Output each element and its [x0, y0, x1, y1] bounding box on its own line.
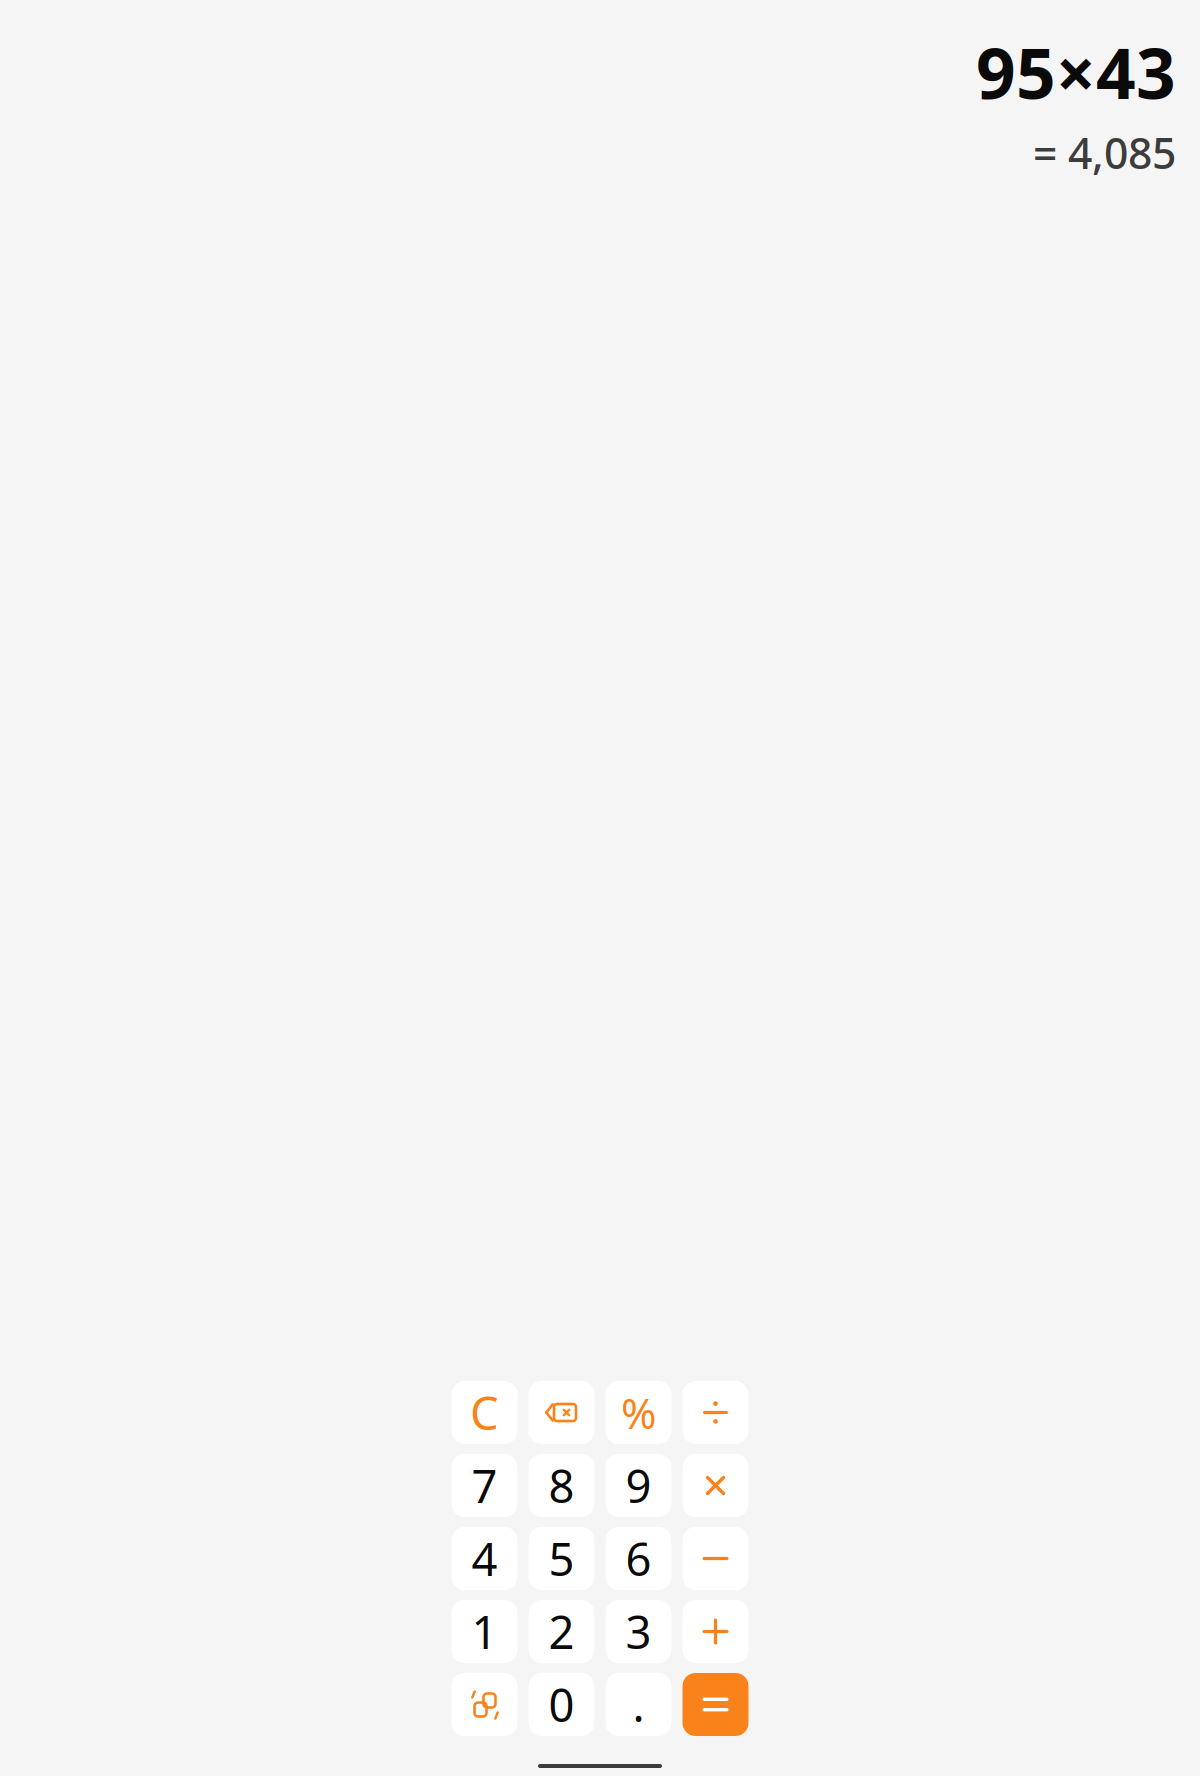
staticText: 6 — [625, 1528, 651, 1589]
button[interactable]: 5 — [528, 1527, 594, 1590]
staticText: 95×43 — [976, 26, 1176, 118]
button[interactable]: Clear — [451, 1381, 517, 1444]
staticText: = 4,085 — [1033, 124, 1176, 181]
staticText: 8 — [548, 1455, 574, 1516]
staticText: 4 — [471, 1528, 497, 1589]
staticText: . — [632, 1674, 644, 1735]
staticText: 2 — [548, 1601, 574, 1662]
button[interactable]: Subtract — [682, 1527, 748, 1590]
button[interactable]: Delete — [528, 1381, 594, 1444]
button[interactable]: Multiply — [682, 1454, 748, 1517]
button[interactable]: 9 — [605, 1454, 671, 1517]
button[interactable]: 3 — [605, 1600, 671, 1663]
staticText: C — [470, 1382, 499, 1443]
button[interactable]: 0 — [528, 1673, 594, 1736]
button[interactable]: 7 — [451, 1454, 517, 1517]
staticText: % — [621, 1384, 656, 1441]
button[interactable]: 4 — [451, 1527, 517, 1590]
staticText: 3 — [625, 1601, 651, 1662]
button[interactable]: Percent — [605, 1381, 671, 1444]
button[interactable]: Decimal point — [605, 1673, 671, 1736]
button[interactable]: Add — [682, 1600, 748, 1663]
button[interactable]: 6 — [605, 1527, 671, 1590]
staticText: 9 — [625, 1455, 651, 1516]
staticText: 0 — [548, 1674, 574, 1735]
button[interactable]: 2 — [528, 1600, 594, 1663]
button[interactable]: Divide — [682, 1381, 748, 1444]
button[interactable]: Convert units — [451, 1673, 517, 1736]
staticText: 5 — [548, 1528, 574, 1589]
staticText: 7 — [471, 1455, 497, 1516]
button[interactable]: 8 — [528, 1454, 594, 1517]
staticText: 1 — [471, 1601, 497, 1662]
button[interactable]: 1 — [451, 1600, 517, 1663]
button[interactable]: Equals — [682, 1673, 748, 1736]
